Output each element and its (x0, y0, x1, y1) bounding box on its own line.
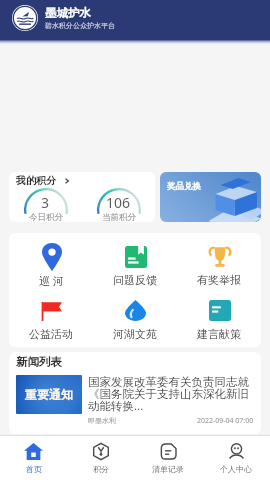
staticText: 当前积分 (102, 212, 136, 222)
staticText: 个人中心 (220, 464, 252, 474)
staticText: 今日积分 (29, 212, 63, 222)
staticText: 墨城护水 (45, 6, 91, 20)
staticText: 建言献策 (197, 327, 241, 341)
staticText: 清单记录 (152, 464, 184, 474)
staticText: 河湖文苑 (113, 327, 157, 341)
button[interactable]: 清单记录 (134, 437, 202, 479)
staticText: 重要通知 (25, 387, 73, 402)
staticText: 我的积分 (16, 174, 56, 187)
button[interactable]: 重要通知 (16, 375, 254, 426)
staticText: 2022-09-04 07:00 (197, 416, 254, 426)
button[interactable]: 公益活动 (9, 296, 93, 341)
staticText: 问题反馈 (113, 273, 157, 287)
staticText: 106 (106, 193, 131, 212)
staticText: 3 (41, 193, 50, 212)
button[interactable]: 问题反馈 (93, 242, 177, 287)
staticText: 公益活动 (29, 327, 73, 341)
button[interactable]: 积分 (67, 437, 134, 479)
button[interactable]: 个人中心 (202, 437, 270, 479)
staticText: 奖品兑换 (167, 181, 201, 192)
button[interactable]: 有奖举报 (177, 242, 261, 287)
button[interactable]: 巡 河 (9, 242, 93, 288)
staticText: 巡 河 (39, 273, 64, 288)
staticText: 积分 (93, 464, 109, 474)
staticText: 碧水积分公众护水平台 (45, 21, 115, 30)
button[interactable]: 奖品兑换 (160, 172, 261, 222)
staticText: 新闻列表 (16, 355, 62, 369)
button[interactable]: 我的积分 (9, 172, 155, 222)
button[interactable]: 建言献策 (177, 296, 261, 341)
button[interactable]: 河湖文苑 (93, 296, 177, 341)
staticText: 国家发展改革委有关负责同志就《国务院关于支持山东深化新旧动能转换... (88, 375, 254, 414)
button[interactable]: 首页 (0, 437, 67, 479)
staticText: 有奖举报 (197, 273, 241, 287)
staticText: 即墨水利 (88, 416, 116, 425)
staticText: 首页 (26, 464, 42, 474)
